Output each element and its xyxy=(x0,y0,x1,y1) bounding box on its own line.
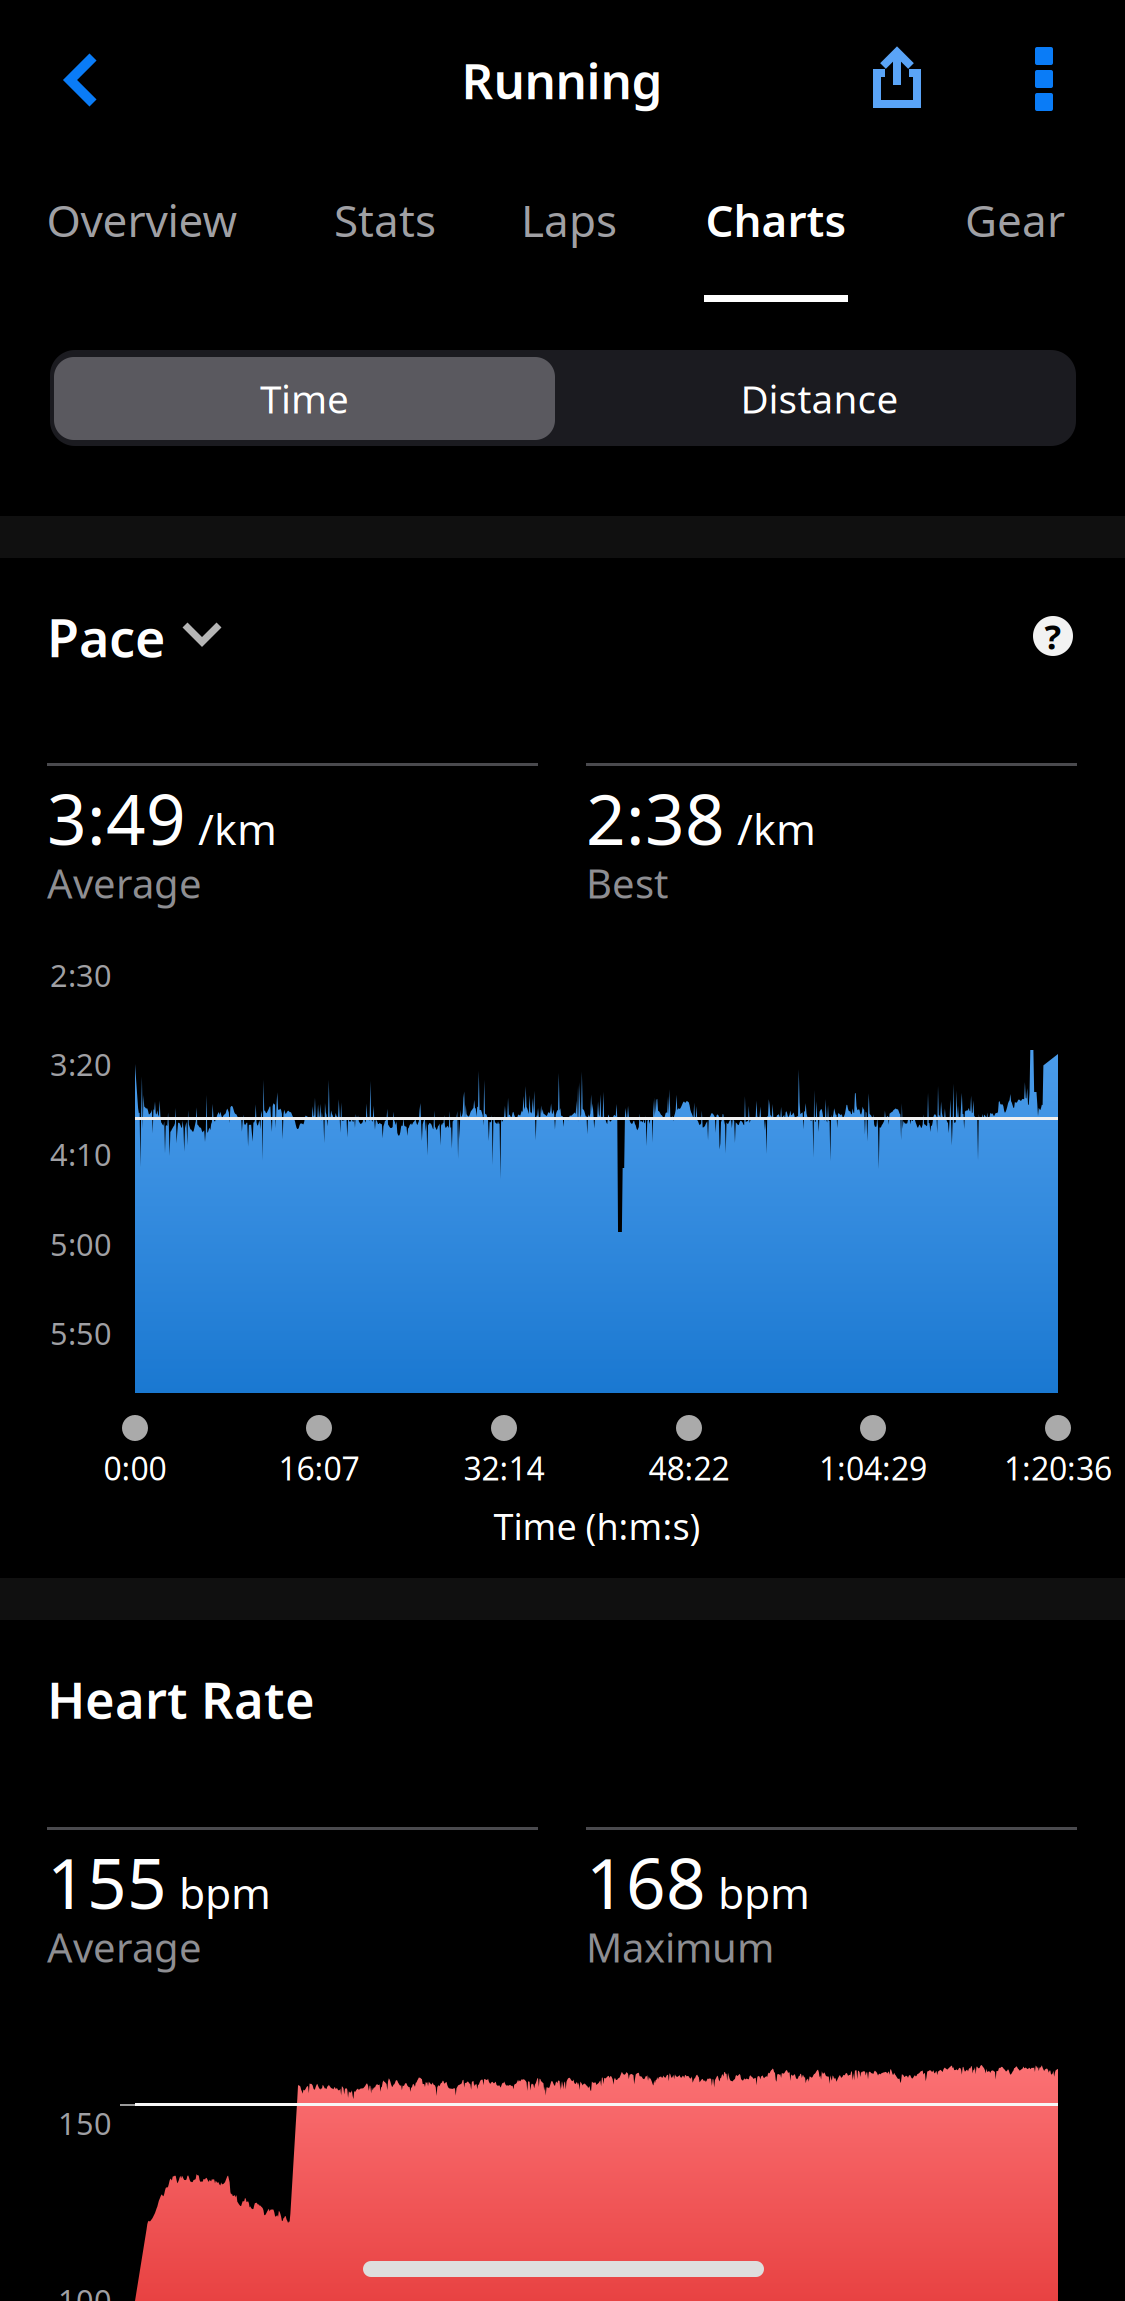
staticText: Heart Rate xyxy=(47,1665,315,1733)
staticText: Running xyxy=(461,47,662,113)
staticText: Average xyxy=(47,1920,202,1973)
staticText: 3:20 xyxy=(50,1044,112,1084)
staticText: bpm xyxy=(179,1864,271,1921)
button[interactable]: Time xyxy=(54,357,555,440)
staticText: 1:20:36 xyxy=(1004,1447,1112,1489)
staticText: Stats xyxy=(334,191,436,249)
staticText: ? xyxy=(1044,613,1061,659)
button[interactable]: Charts xyxy=(669,176,883,316)
staticText: 150 xyxy=(58,2103,112,2143)
button[interactable]: Laps xyxy=(480,176,658,316)
staticText: Maximum xyxy=(586,1920,774,1973)
button[interactable]: Pace xyxy=(47,594,277,680)
button[interactable]: More options xyxy=(989,14,1099,144)
staticText: Laps xyxy=(521,191,617,249)
staticText: Distance xyxy=(740,373,898,424)
staticText: 100 xyxy=(58,2280,112,2301)
staticText: 168 xyxy=(586,1836,706,1928)
staticText: Charts xyxy=(705,191,846,249)
staticText: /km xyxy=(198,800,277,857)
button[interactable]: About pace xyxy=(1033,616,1073,656)
staticText: 1:04:29 xyxy=(819,1447,927,1489)
staticText: bpm xyxy=(718,1864,810,1921)
staticText: 5:00 xyxy=(50,1224,112,1264)
staticText: Pace xyxy=(47,602,165,672)
button[interactable]: Distance xyxy=(561,357,1078,440)
staticText: 4:10 xyxy=(50,1134,112,1174)
staticText: Overview xyxy=(46,191,237,249)
staticText: 16:07 xyxy=(278,1447,359,1489)
staticText: Best xyxy=(586,856,668,909)
staticText: 5:50 xyxy=(50,1313,112,1353)
staticText: Time (h:m:s) xyxy=(493,1502,700,1550)
staticText: 2:30 xyxy=(50,955,112,995)
button[interactable]: Gear xyxy=(920,176,1110,316)
staticText: 0:00 xyxy=(103,1447,166,1489)
staticText: Gear xyxy=(965,191,1065,249)
staticText: /km xyxy=(737,800,816,857)
staticText: 3:49 xyxy=(47,772,186,864)
staticText: Average xyxy=(47,856,202,909)
button[interactable]: Share xyxy=(841,39,971,169)
staticText: Time xyxy=(260,373,349,424)
staticText: 2:38 xyxy=(586,772,725,864)
staticText: 155 xyxy=(47,1836,167,1928)
button[interactable]: Stats xyxy=(292,176,478,316)
staticText: 48:22 xyxy=(648,1447,729,1489)
button[interactable]: Back xyxy=(0,18,140,148)
staticText: 32:14 xyxy=(463,1447,544,1489)
button[interactable]: Overview xyxy=(17,176,267,316)
